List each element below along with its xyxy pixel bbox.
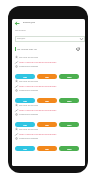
staticText: View	[45, 76, 49, 78]
button[interactable]: user name and surname	[15, 127, 82, 150]
staticText: View	[45, 124, 49, 126]
button[interactable]: Open	[59, 74, 79, 79]
staticText: user name and surname	[19, 128, 38, 130]
button[interactable]: user name and surname	[15, 103, 82, 126]
other: Back	[15, 22, 19, 25]
staticText: Programming Language	[19, 65, 38, 67]
staticText: https://github.com/android/androidx	[19, 109, 57, 112]
staticText: user name and surname	[19, 80, 38, 82]
button[interactable]: Load	[15, 74, 35, 79]
button[interactable]: View	[37, 74, 57, 79]
staticText: android Java	[23, 21, 35, 24]
staticText: Open	[67, 100, 72, 102]
staticText: user name and surname	[19, 56, 38, 58]
button[interactable]: user name and surname	[15, 55, 82, 78]
staticText: Select Query	[17, 38, 26, 40]
button[interactable]: Open	[59, 146, 79, 151]
button[interactable]: View	[37, 122, 57, 127]
button[interactable]: Open	[59, 122, 79, 127]
staticText: Programming Language	[19, 113, 38, 115]
staticText: user name and surname	[19, 104, 38, 106]
staticText: Programming Language	[19, 137, 38, 139]
staticText: https://github.com/android/androidx	[19, 133, 57, 136]
staticText: Load	[23, 100, 27, 102]
staticText: View	[45, 148, 49, 150]
staticText: Load	[23, 148, 27, 150]
button[interactable]: user name and surname	[15, 79, 82, 102]
button[interactable]: Open	[59, 98, 79, 103]
staticText: Load	[23, 76, 27, 78]
button[interactable]: View	[37, 146, 57, 151]
staticText: Top Android Topic List	[17, 48, 37, 51]
staticText: Open	[67, 124, 72, 126]
button[interactable]: Select Query	[15, 36, 85, 42]
staticText: Programming Language	[19, 89, 38, 91]
staticText: Select your query	[15, 30, 26, 32]
button[interactable]: View	[37, 98, 57, 103]
button[interactable]: Load	[15, 98, 35, 103]
button[interactable]: Back	[15, 20, 45, 26]
staticText: Open	[67, 76, 72, 78]
button[interactable]: Load	[15, 146, 35, 151]
staticText: Open	[67, 148, 72, 150]
staticText: View	[45, 100, 49, 102]
staticText: https://github.com/android/androidx	[19, 85, 57, 88]
staticText: Load	[23, 124, 27, 126]
button[interactable]: Refresh	[76, 47, 80, 51]
staticText: https://github.com/android/androidx	[19, 61, 57, 64]
button[interactable]: Load	[15, 122, 35, 127]
